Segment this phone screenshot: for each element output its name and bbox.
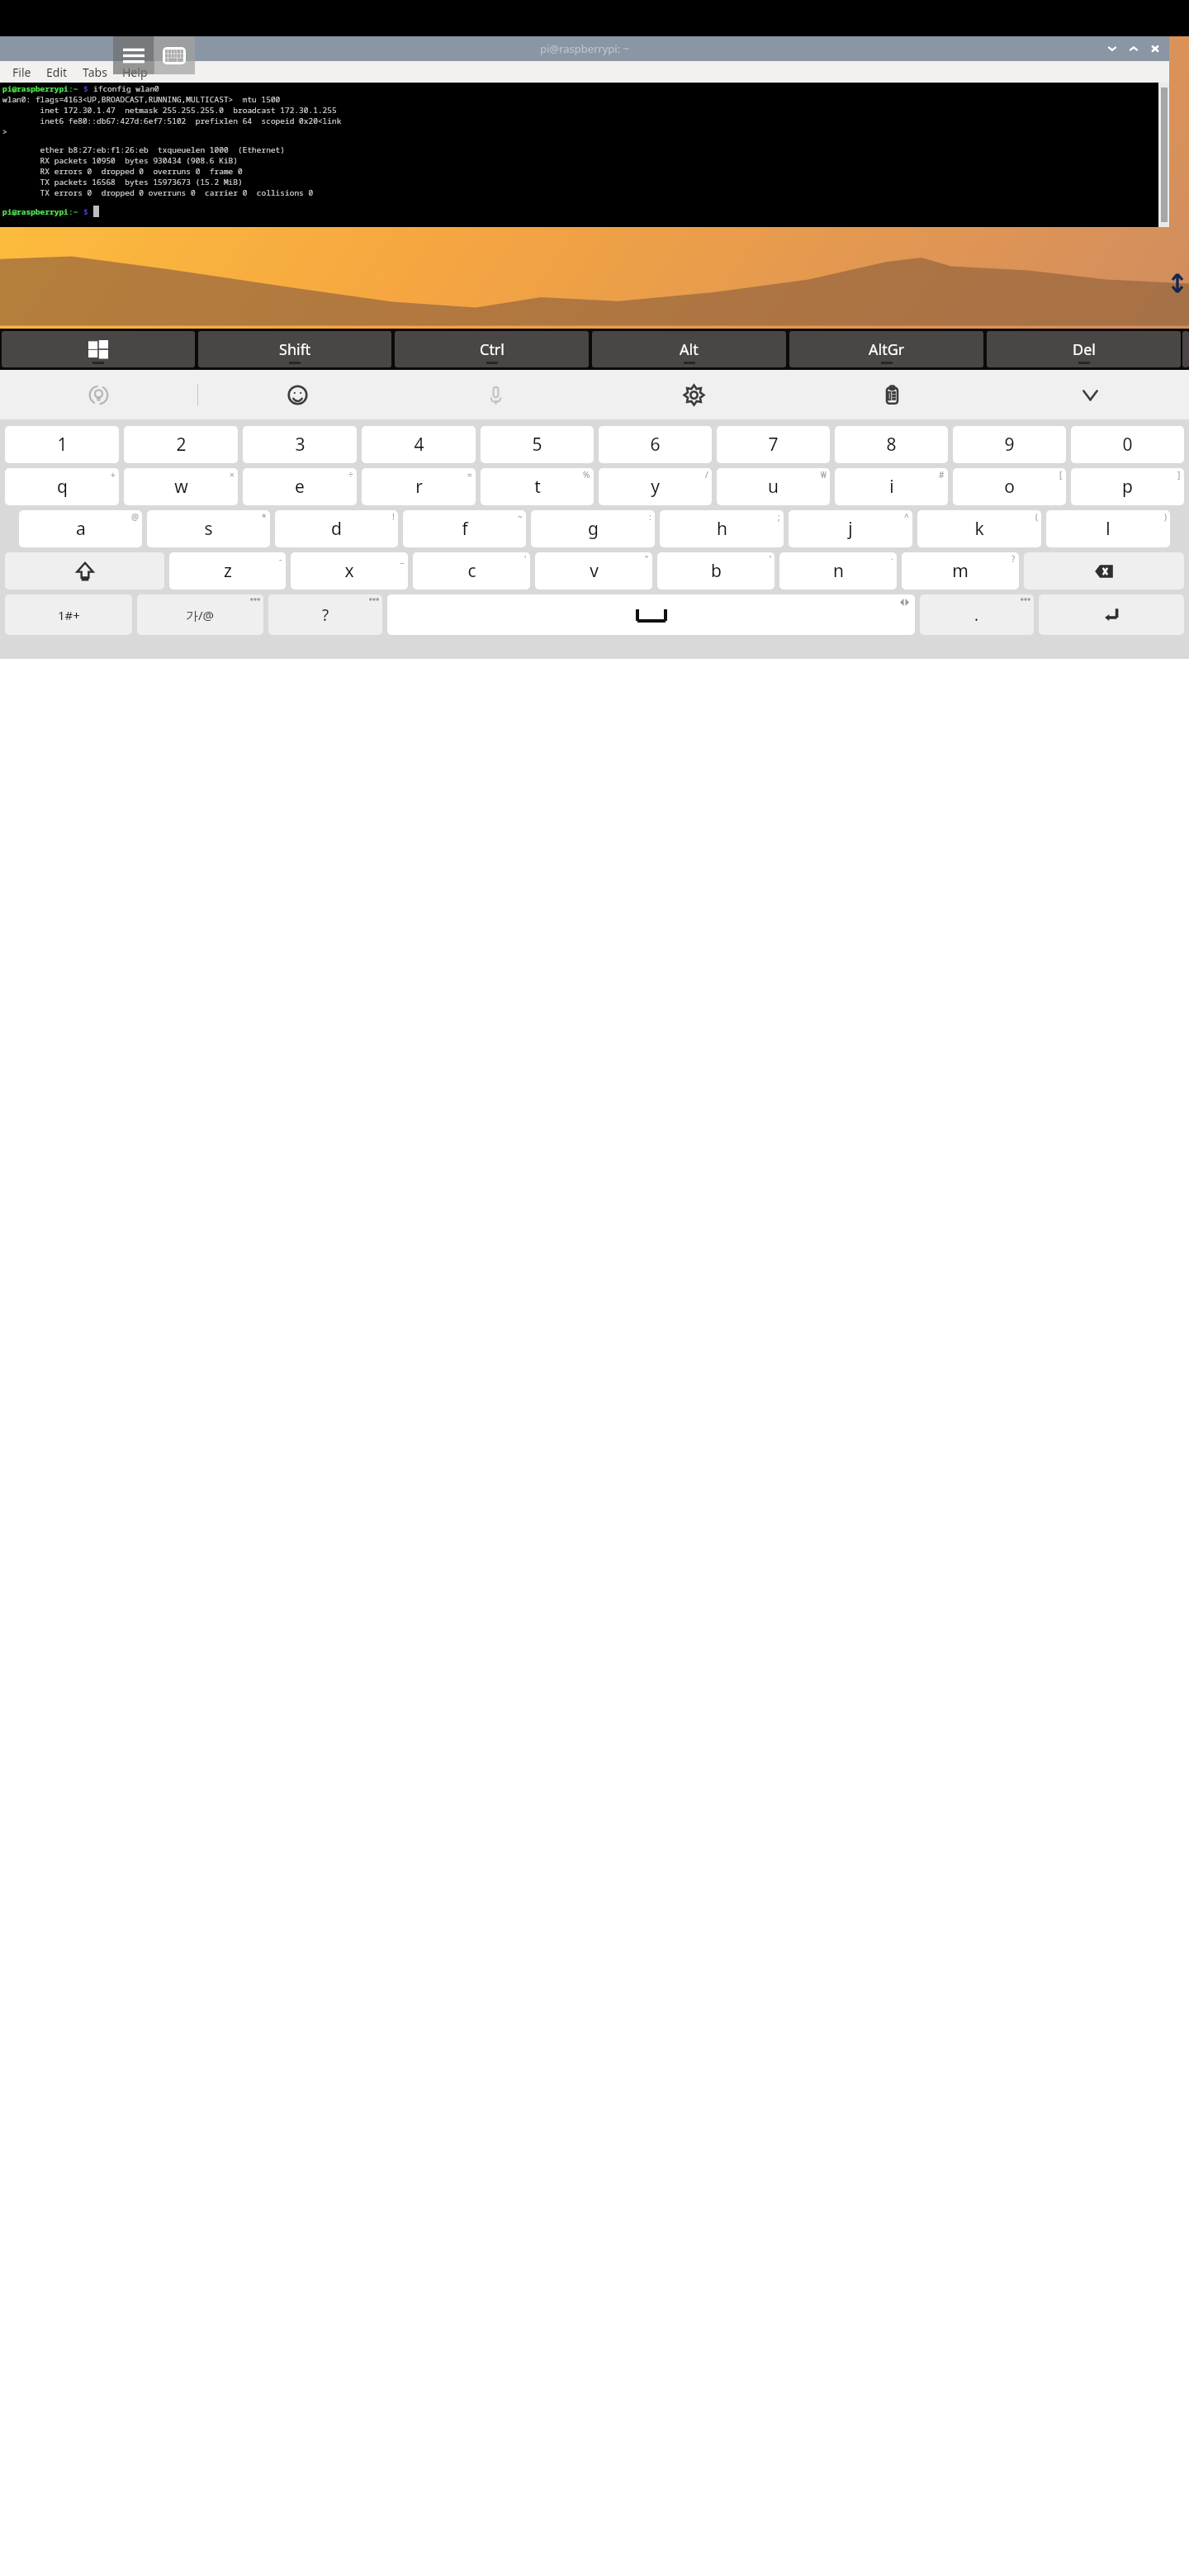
staticText: Help [122,64,148,80]
button[interactable]: w [124,468,238,505]
button[interactable]: Menu [113,36,154,74]
button[interactable]: i [835,468,948,505]
button[interactable]: s [147,510,270,547]
staticText: 3 [295,433,306,457]
button[interactable]: u [717,468,830,505]
staticText: 1 [57,433,68,457]
staticText: · [891,553,893,565]
staticText: inet 172.30.1.47 netmask 255.255.255.0 b… [2,105,337,116]
staticText: e [295,475,305,499]
button[interactable]: c [413,552,530,590]
button[interactable]: z [169,552,286,590]
button[interactable]: 4 [362,426,476,463]
button[interactable]: 5 [481,426,594,463]
button[interactable]: f [403,510,526,547]
button[interactable]: 2 [124,426,238,463]
button[interactable]: Show keyboard [154,36,195,74]
button[interactable]: Shift [198,331,391,367]
button[interactable]: e [243,468,357,505]
staticText: # [939,469,945,481]
staticText: k [974,517,984,541]
staticText: RX packets 10950 bytes 930434 (908.6 KiB… [2,155,239,166]
button[interactable]: b [657,552,775,590]
button[interactable]: Del [987,331,1181,367]
staticText: ; [778,511,780,523]
button[interactable]: Windows key [2,331,195,367]
staticText: * [262,511,267,523]
button[interactable]: m [902,552,1019,590]
button[interactable]: Enter [1039,594,1184,635]
button[interactable]: Edit [39,62,75,83]
button[interactable]: d [275,510,398,547]
button[interactable]: Space [387,594,915,635]
button[interactable]: Maximize [1123,38,1144,59]
staticText: i [889,475,894,499]
staticText: v [590,559,599,583]
staticText: . [974,604,979,626]
staticText: :~ [69,206,83,217]
button[interactable]: Settings [594,370,793,419]
button[interactable]: Ctrl [395,331,589,367]
staticText: d [331,517,342,541]
staticText: a [76,517,86,541]
staticText: pi@raspberrypi [2,206,69,217]
button[interactable]: Tabs [75,62,115,83]
button[interactable]: Alt [592,331,786,367]
staticText: [ [1059,469,1063,481]
staticText: = [467,469,472,481]
button[interactable]: x [291,552,408,590]
button[interactable]: h [660,510,784,547]
button[interactable]: . [920,594,1034,635]
button[interactable]: ? [268,594,382,635]
staticText: y [651,475,660,499]
button[interactable]: r [362,468,476,505]
button[interactable]: y [599,468,712,505]
button[interactable]: 8 [835,426,948,463]
staticText: @ [131,511,139,523]
staticText: AltGr [869,339,905,360]
staticText: :~ [69,83,83,94]
staticText: _ [400,553,405,565]
button[interactable]: 0 [1071,426,1184,463]
button[interactable]: 3 [243,426,357,463]
staticText: ! [392,511,395,523]
button[interactable]: Hide keyboard [991,370,1189,419]
staticText: 7 [768,433,779,457]
button[interactable]: 1 [5,426,119,463]
button[interactable]: l [1046,510,1170,547]
button[interactable]: t [481,468,594,505]
button[interactable]: Voice input [396,370,594,419]
button[interactable]: p [1071,468,1184,505]
button[interactable]: v [535,552,652,590]
button[interactable]: o [953,468,1066,505]
button[interactable]: Clipboard [793,370,991,419]
button[interactable]: Shift [5,552,164,590]
button[interactable]: a [19,510,142,547]
button[interactable]: 9 [953,426,1066,463]
button[interactable]: j [789,510,912,547]
button[interactable]: Close [1144,38,1166,59]
button[interactable]: n [779,552,897,590]
staticText: s [204,517,213,541]
staticText: × [230,469,234,481]
button[interactable]: 6 [599,426,712,463]
button[interactable]: 가/@ [137,594,263,635]
staticText: r [415,475,423,499]
button[interactable]: Help [115,62,155,83]
button[interactable]: AltGr [789,331,983,367]
staticText: Ctrl [480,339,504,360]
button[interactable]: Minimize [1101,38,1123,59]
staticText: Del [1073,339,1096,360]
button[interactable]: 1#+ [5,594,132,635]
button[interactable]: q [5,468,119,505]
staticText: x [344,559,354,583]
button[interactable]: 7 [717,426,830,463]
button[interactable]: Suggestions [0,370,197,419]
staticText: ) [1164,511,1167,523]
button[interactable]: Move viewport [255,368,323,436]
button[interactable]: g [531,510,655,547]
button[interactable]: Emoji [198,370,396,419]
button[interactable]: k [917,510,1041,547]
button[interactable]: File [5,62,39,83]
button[interactable]: Backspace [1024,552,1184,590]
